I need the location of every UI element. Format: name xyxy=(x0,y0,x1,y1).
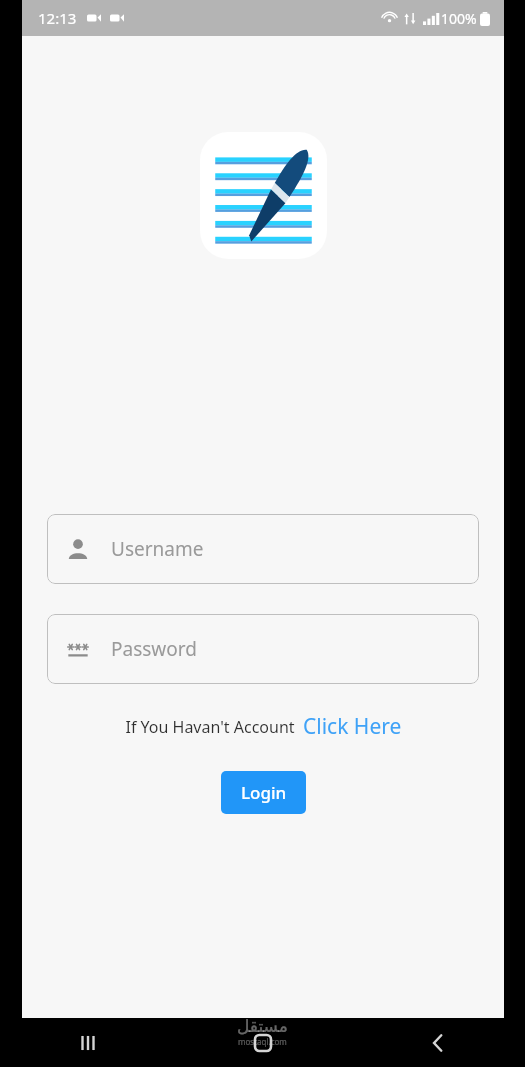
staticText: 100% xyxy=(441,9,477,28)
button[interactable]: Click Here xyxy=(303,710,402,743)
staticText: Password xyxy=(111,636,197,662)
button[interactable]: Back xyxy=(350,1018,525,1067)
button[interactable]: Username xyxy=(47,514,479,584)
staticText: 12:13 xyxy=(38,8,77,28)
button[interactable]: Password xyxy=(47,614,479,684)
staticText: Login xyxy=(241,781,287,804)
button[interactable]: Login xyxy=(221,771,306,814)
staticText: Click Here xyxy=(303,712,402,741)
staticText: mostaql.com xyxy=(238,1036,287,1047)
staticText: Username xyxy=(111,536,204,562)
staticText: مستقل xyxy=(237,1016,288,1036)
button[interactable]: Home xyxy=(175,1018,350,1067)
staticText: If You Havan't Account xyxy=(125,716,295,738)
button[interactable]: Recents xyxy=(0,1018,175,1067)
